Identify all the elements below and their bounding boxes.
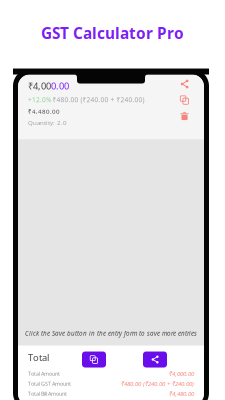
button[interactable]: Copy totals	[82, 351, 106, 367]
button[interactable]: Copy entry	[179, 94, 190, 105]
staticText: GST Calculator Pro	[41, 23, 184, 43]
staticText: ₹4,480.00	[28, 107, 60, 115]
staticText: ₹4,000.00	[169, 369, 194, 378]
button[interactable]: Share entry	[179, 78, 190, 89]
staticText: +12.0%	[28, 95, 51, 104]
staticText: Total	[28, 351, 49, 364]
staticText: Total GST Amount	[28, 380, 71, 387]
button[interactable]: Delete entry	[179, 110, 190, 121]
staticText: Click the Save button in the entry form …	[25, 329, 197, 337]
staticText: Total Amount	[28, 370, 60, 377]
staticText: ₹480.00 (₹240.00 + ₹240.00)	[121, 379, 194, 388]
staticText: Quantity: 2.0	[28, 118, 67, 127]
staticText: ₹480.00 (₹240.00 + ₹240.00)	[52, 95, 144, 104]
staticText: ₹4,480.00	[169, 389, 194, 398]
staticText: ₹4,00	[28, 79, 51, 92]
staticText: Total Bill Amount	[28, 390, 67, 397]
staticText: 0.00	[51, 79, 69, 92]
button[interactable]: Share totals	[143, 351, 167, 367]
